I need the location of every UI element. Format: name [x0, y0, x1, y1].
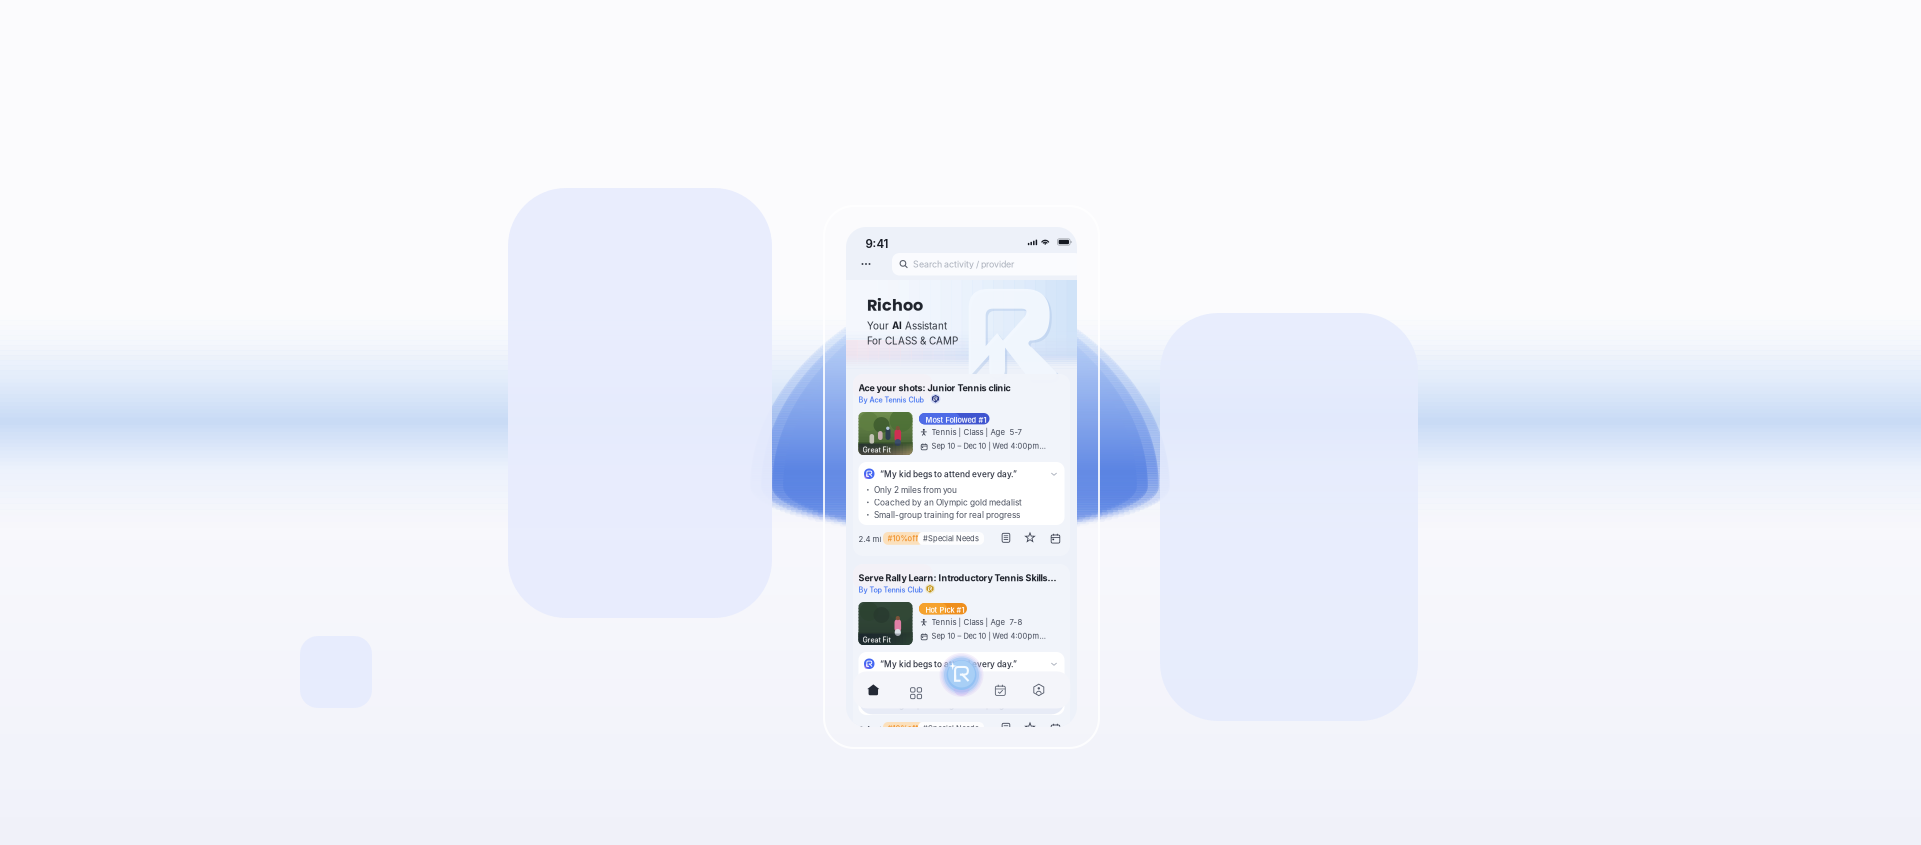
button[interactable]: Browse [898, 671, 928, 708]
button[interactable]: Save [1023, 532, 1036, 543]
staticText: Sep 10 – Dec 10 | Wed 4:00pm… [932, 631, 1046, 640]
staticText: For CLASS & CAMP [867, 335, 958, 347]
staticText: Tennis | Class | Age 7-8 [932, 617, 1023, 627]
staticText: By Top Tennis Club [858, 585, 922, 594]
button[interactable]: Search activity / provider [892, 253, 1082, 275]
staticText: Hot Pick #1 [926, 606, 965, 614]
staticText: Coached by an Olympic gold medalist [874, 687, 1022, 697]
staticText: 2.4 mi [858, 534, 881, 544]
staticText: “My kid begs to attend every day.” [880, 659, 1017, 669]
button[interactable]: Description [998, 722, 1011, 733]
button[interactable]: More options [858, 253, 874, 275]
staticText: Tennis | Class | Age 5-7 [932, 427, 1022, 437]
staticText: #10%off [887, 724, 918, 733]
staticText: Small-group training for real progress [874, 700, 1020, 710]
button[interactable]: Serve Rally Learn: Introductory Tennis S… [853, 564, 1070, 746]
staticText: 2.4 mi [858, 724, 881, 734]
button[interactable]: Home [858, 671, 888, 708]
button[interactable]: Ask Richoo AI [939, 653, 983, 697]
staticText: Only 2 miles from you [874, 485, 957, 495]
staticText: #Special Needs [923, 534, 979, 543]
staticText: Search activity / provider [913, 259, 1014, 269]
button[interactable]: Add to calendar [1048, 532, 1061, 543]
staticText: “My kid begs to attend every day.” [880, 469, 1017, 479]
staticText: Sep 10 – Dec 10 | Wed 4:00pm… [932, 441, 1046, 450]
button[interactable]: Description [998, 532, 1011, 543]
staticText: Great Fit [862, 636, 890, 644]
staticText: Your [867, 320, 892, 332]
staticText: By Ace Tennis Club [858, 395, 923, 404]
staticText: Serve Rally Learn: Introductory Tennis S… [858, 572, 1056, 583]
staticText: Ace your shots: Junior Tennis clinic [858, 382, 1010, 393]
staticText: #Special Needs [923, 724, 979, 733]
staticText: Great Fit [862, 446, 890, 454]
staticText: Most Followed #1 [926, 416, 987, 424]
staticText: AI [892, 320, 902, 332]
staticText: #10%off [887, 534, 918, 543]
staticText: Small-group training for real progress [874, 510, 1020, 520]
staticText: Coached by an Olympic gold medalist [874, 497, 1022, 507]
staticText: 9:41 [865, 237, 888, 251]
staticText: Assistant [902, 320, 947, 332]
button[interactable]: Profile [1024, 671, 1054, 708]
staticText: Richoo [867, 294, 923, 316]
button[interactable]: Save [1023, 722, 1036, 733]
button[interactable]: Ace your shots: Junior Tennis clinic [853, 374, 1070, 556]
button[interactable]: My schedule [985, 671, 1015, 708]
button[interactable]: Add to calendar [1048, 722, 1061, 733]
staticText: Only 2 miles from you [874, 675, 957, 685]
